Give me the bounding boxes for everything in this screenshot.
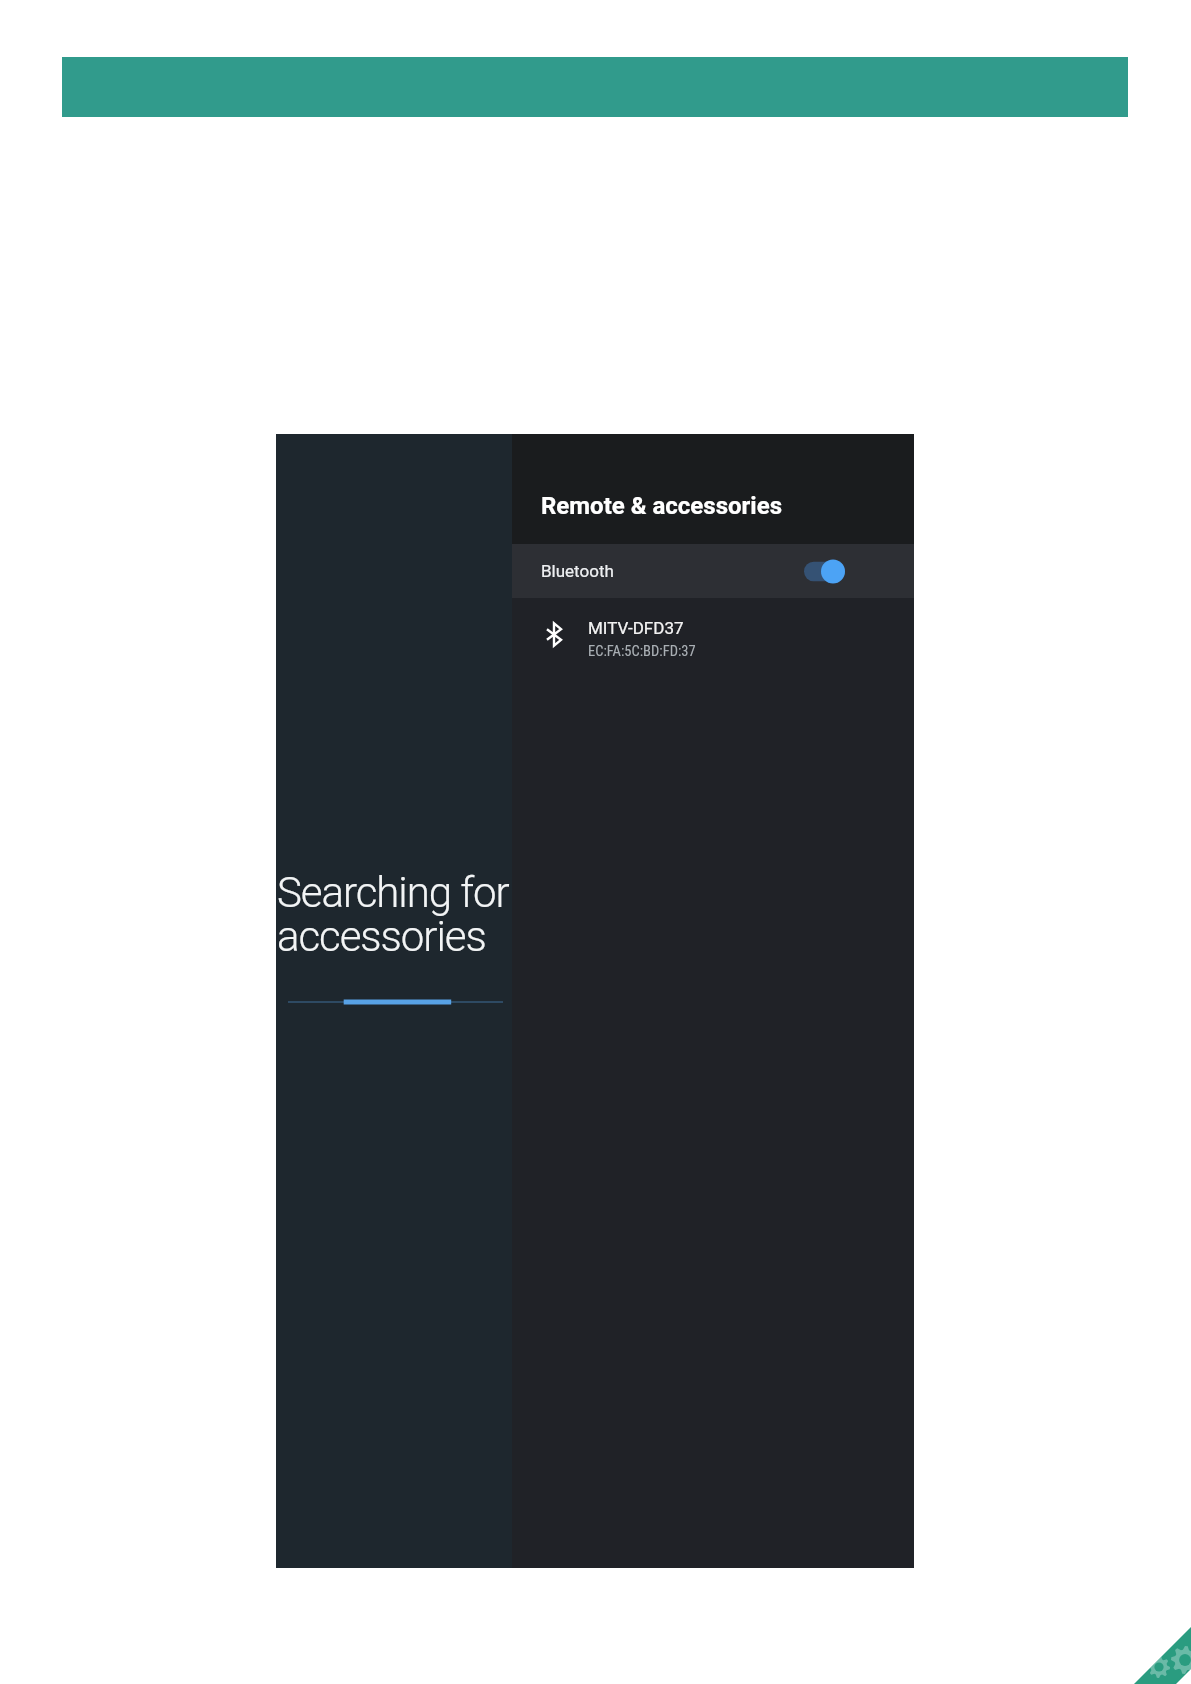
button[interactable]: Bluetooth on/off toggle (804, 559, 845, 584)
staticText: Bluetooth (541, 561, 614, 581)
staticText: accessories (277, 912, 486, 961)
staticText: MITV-DFD37 (588, 618, 684, 638)
staticText: Remote & accessories (541, 492, 783, 520)
button[interactable]: MITV-DFD37 (512, 598, 914, 678)
staticText: Searching for (277, 868, 509, 917)
button[interactable]: Bluetooth (512, 544, 914, 598)
staticText: EC:FA:5C:BD:FD:37 (588, 643, 696, 660)
